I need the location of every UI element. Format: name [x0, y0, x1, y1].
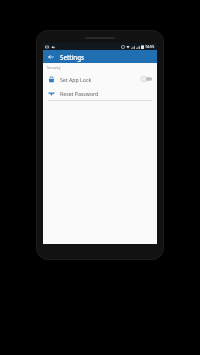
- button[interactable]: Reset Password: [43, 86, 157, 100]
- button[interactable]: Back: [46, 52, 56, 62]
- staticText: Set App Lock: [60, 76, 141, 83]
- staticText: Reset Password: [60, 90, 99, 97]
- staticText: 14:55: [145, 44, 155, 49]
- button[interactable]: Toggle app lock: [141, 76, 152, 82]
- button[interactable]: Set App Lock: [43, 72, 157, 86]
- staticText: Settings: [60, 53, 85, 61]
- staticText: Security: [47, 65, 61, 70]
